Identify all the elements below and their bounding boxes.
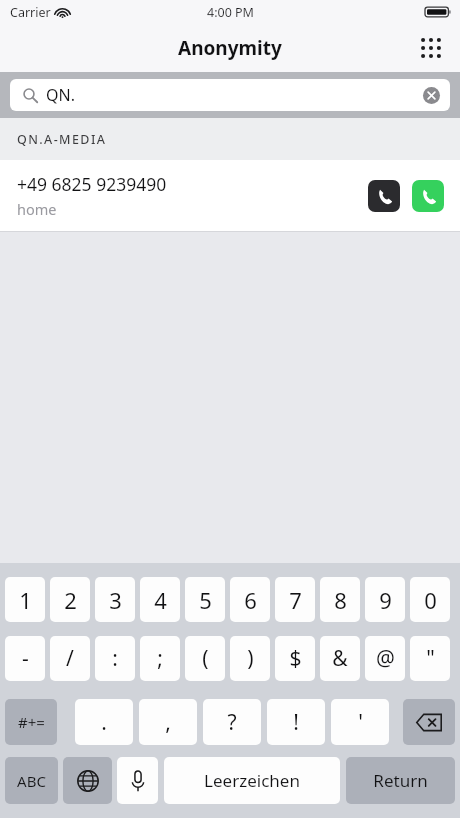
button[interactable]: 7 [275, 577, 315, 622]
button[interactable]: +49 6825 9239490 [0, 160, 460, 231]
button[interactable]: , [139, 699, 197, 745]
staticText: 4:00 PM [207, 4, 254, 21]
button[interactable]: Dictate [117, 757, 158, 804]
button[interactable]: ABC [5, 757, 58, 804]
staticText: . [101, 708, 107, 737]
staticText: & [332, 644, 348, 673]
button[interactable]: 9 [365, 577, 405, 622]
staticText: Anonymity [178, 35, 282, 61]
button[interactable]: . [75, 699, 133, 745]
button[interactable]: / [50, 636, 90, 681]
staticText: 3 [109, 585, 122, 615]
staticText: 4 [154, 585, 167, 615]
button[interactable]: 6 [230, 577, 270, 622]
staticText: ABC [17, 771, 46, 791]
staticText: ' [358, 708, 363, 737]
button[interactable]: " [410, 636, 450, 681]
button[interactable]: Clear text [420, 84, 442, 106]
staticText: Leerzeichen [204, 769, 300, 792]
staticText: Return [373, 769, 428, 792]
button[interactable]: - [5, 636, 45, 681]
staticText: ( [202, 644, 209, 673]
button[interactable]: 1 [5, 577, 45, 622]
button[interactable]: ? [203, 699, 261, 745]
staticText: 0 [424, 585, 437, 615]
button[interactable]: ! [267, 699, 325, 745]
staticText: 6 [244, 585, 257, 615]
staticText: $ [289, 644, 302, 673]
staticText: 9 [379, 585, 392, 615]
button[interactable]: Leerzeichen [164, 757, 340, 804]
button[interactable]: ' [331, 699, 389, 745]
staticText: , [165, 708, 171, 737]
button[interactable]: 5 [185, 577, 225, 622]
button[interactable]: QN. [10, 79, 450, 111]
staticText: #+= [18, 712, 45, 732]
staticText: QN. [46, 84, 75, 106]
button[interactable]: 0 [410, 577, 450, 622]
staticText: 7 [289, 585, 302, 615]
button[interactable]: Backspace [403, 699, 455, 745]
staticText: : [112, 644, 118, 673]
button[interactable]: ( [185, 636, 225, 681]
button[interactable]: Keypad [414, 31, 448, 65]
button[interactable]: Call [412, 180, 444, 212]
button[interactable]: @ [365, 636, 405, 681]
button[interactable]: Return [346, 757, 455, 804]
staticText: ; [157, 644, 163, 673]
button[interactable]: 4 [140, 577, 180, 622]
staticText: - [22, 644, 29, 673]
staticText: 1 [19, 585, 32, 615]
staticText: +49 6825 9239490 [17, 172, 167, 196]
staticText: 2 [64, 585, 77, 615]
button[interactable]: Change keyboard language [63, 757, 112, 804]
button[interactable]: 8 [320, 577, 360, 622]
button[interactable]: & [320, 636, 360, 681]
staticText: 5 [199, 585, 212, 615]
button[interactable]: $ [275, 636, 315, 681]
staticText: @ [376, 644, 395, 673]
staticText: home [17, 199, 57, 219]
button[interactable]: ) [230, 636, 270, 681]
button[interactable]: 2 [50, 577, 90, 622]
button[interactable]: 3 [95, 577, 135, 622]
staticText: 8 [334, 585, 347, 615]
staticText: ? [227, 708, 237, 737]
staticText: ! [293, 708, 299, 737]
button[interactable]: : [95, 636, 135, 681]
staticText: " [426, 644, 435, 673]
button[interactable]: Call via app [368, 180, 400, 212]
staticText: ) [247, 644, 254, 673]
staticText: Carrier [10, 4, 51, 21]
staticText: QN.A-MEDIA [17, 131, 107, 148]
button[interactable]: ; [140, 636, 180, 681]
button[interactable]: #+= [5, 699, 57, 745]
staticText: / [66, 644, 74, 673]
